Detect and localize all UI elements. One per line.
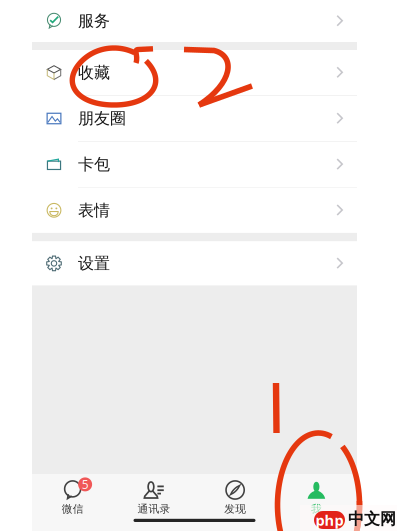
button[interactable]: 5 <box>32 474 113 518</box>
staticText: 5 <box>82 476 89 492</box>
button[interactable]: 设置 <box>32 241 357 285</box>
button[interactable]: 收藏 <box>32 50 357 95</box>
button[interactable]: 朋友圈 <box>32 96 357 141</box>
button[interactable]: 我 <box>276 474 357 518</box>
button[interactable]: 通讯录 <box>113 474 194 518</box>
staticText: 我 <box>311 502 322 515</box>
staticText: 发现 <box>224 502 246 515</box>
staticText: 设置 <box>78 254 110 273</box>
button[interactable]: 发现 <box>194 474 276 518</box>
staticText: 通讯录 <box>137 502 170 515</box>
staticText: 收藏 <box>78 63 110 82</box>
button[interactable]: 卡包 <box>32 142 357 187</box>
staticText: php <box>315 510 343 530</box>
staticText: 服务 <box>78 11 110 31</box>
button[interactable]: 表情 <box>32 188 357 233</box>
button[interactable]: 服务 <box>32 0 357 42</box>
staticText: 朋友圈 <box>78 109 126 128</box>
staticText: 微信 <box>62 502 84 515</box>
staticText: 表情 <box>78 200 110 220</box>
staticText: 中文网 <box>348 509 396 529</box>
staticText: 卡包 <box>78 155 110 174</box>
